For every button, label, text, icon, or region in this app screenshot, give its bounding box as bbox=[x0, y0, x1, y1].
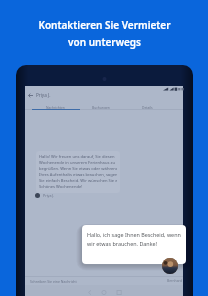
other: Profile photo bbox=[162, 258, 178, 274]
button[interactable]: Back bbox=[25, 90, 35, 100]
staticText: Hallo, ich sage Ihnen Bescheid, wenn wir… bbox=[87, 231, 183, 248]
staticText: Bernhard bbox=[167, 278, 183, 283]
staticText: Nachrichten bbox=[46, 105, 65, 109]
other: System navigation bbox=[85, 289, 123, 296]
button[interactable]: Buchungen bbox=[78, 103, 124, 110]
button[interactable]: Schreiben Sie eine Nachricht bbox=[30, 277, 183, 286]
other: Status icons bbox=[162, 87, 181, 91]
staticText: Buchungen bbox=[92, 105, 110, 109]
button[interactable]: Details bbox=[124, 103, 170, 110]
button[interactable]: Nachrichten bbox=[32, 103, 78, 110]
staticText: Kontaktieren Sie Vermieter bbox=[38, 18, 171, 32]
staticText: Priya J. bbox=[43, 193, 55, 198]
staticText: Priya J. bbox=[36, 92, 51, 98]
button[interactable]: Hallo, ich sage Ihnen Bescheid, wenn wir… bbox=[82, 225, 186, 264]
staticText: Details bbox=[142, 105, 153, 109]
staticText: Schreiben Sie eine Nachricht bbox=[30, 279, 77, 284]
staticText: Hallo! Wir freuen uns darauf, Sie diesen… bbox=[39, 154, 117, 190]
staticText: von unterwegs bbox=[68, 35, 141, 49]
